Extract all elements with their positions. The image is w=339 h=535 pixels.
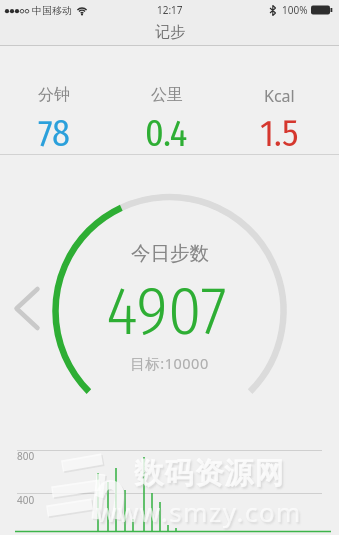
- staticText: 公里: [151, 85, 183, 105]
- staticText: 今日步数: [131, 241, 209, 266]
- staticText: 78: [38, 112, 70, 155]
- staticText: 800: [17, 449, 35, 463]
- button[interactable]: [5, 280, 49, 336]
- staticText: 数码资源网: [134, 455, 284, 492]
- staticText: 中国移动: [32, 4, 72, 17]
- staticText: 1.5: [260, 112, 299, 155]
- staticText: 4907: [106, 271, 227, 351]
- staticText: 100%: [282, 3, 308, 17]
- staticText: Kcal: [264, 85, 295, 107]
- button[interactable]: 1.5: [223, 112, 336, 155]
- staticText: 400: [17, 493, 35, 507]
- button[interactable]: 78: [0, 112, 110, 155]
- button[interactable]: 0.4: [110, 112, 223, 155]
- button[interactable]: 记步: [0, 20, 339, 45]
- staticText: 0.4: [145, 112, 188, 155]
- staticText: 分钟: [38, 85, 70, 105]
- staticText: 记步: [155, 23, 185, 42]
- staticText: www.smzy.com: [96, 494, 302, 529]
- staticText: 12:17: [157, 3, 183, 17]
- staticText: 目标:10000: [130, 353, 209, 373]
